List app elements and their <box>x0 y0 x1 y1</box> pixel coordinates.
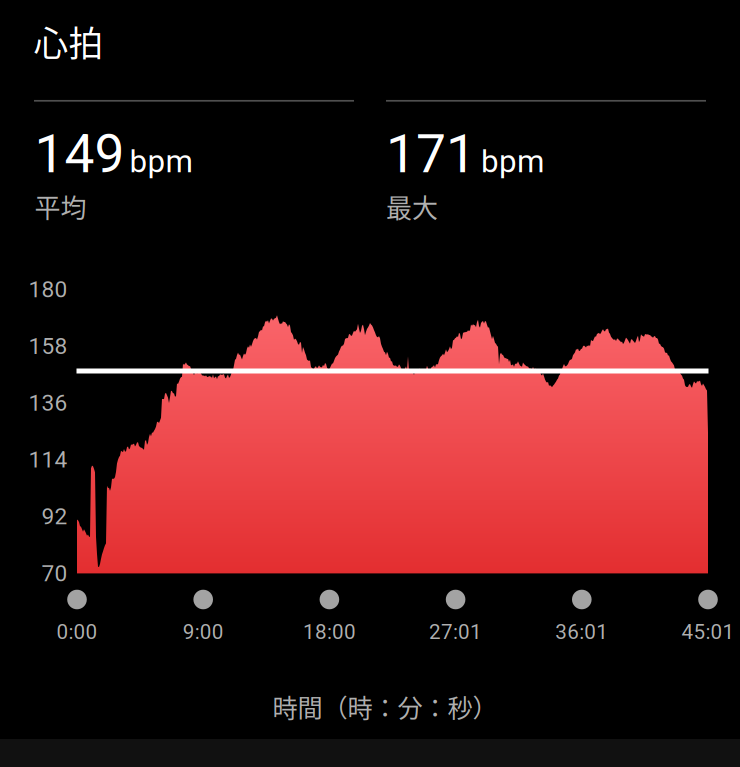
staticText: bpm <box>481 143 544 180</box>
staticText: 時間（時：分：秒） <box>272 688 497 725</box>
staticText: 171 <box>386 123 476 185</box>
staticText: 136 <box>28 390 67 416</box>
staticText: 9:00 <box>183 620 224 644</box>
staticText: 92 <box>41 503 67 530</box>
staticText: bpm <box>129 143 192 180</box>
staticText: 180 <box>28 276 67 303</box>
staticText: 最大 <box>386 188 438 225</box>
staticText: 心拍 <box>33 16 103 67</box>
staticText: 158 <box>28 333 67 359</box>
staticText: 0:00 <box>56 620 97 644</box>
staticText: 18:00 <box>303 620 356 644</box>
staticText: 149 <box>34 123 124 185</box>
staticText: 36:01 <box>555 620 608 644</box>
staticText: 27:01 <box>429 620 482 644</box>
staticText: 70 <box>41 560 67 587</box>
staticText: 平均 <box>34 188 86 225</box>
staticText: 45:01 <box>681 620 734 644</box>
staticText: 114 <box>28 446 67 473</box>
